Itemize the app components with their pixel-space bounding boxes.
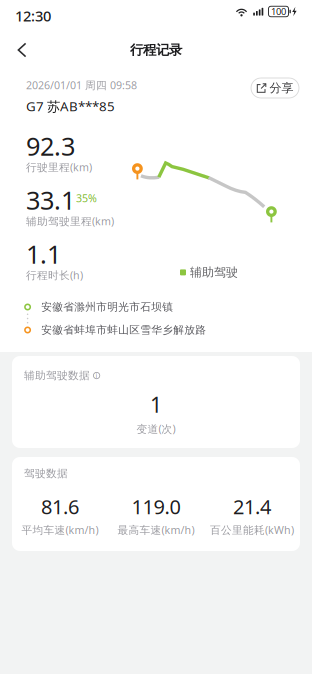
staticText: 12:30 (15, 6, 51, 25)
staticText: 119.0 (131, 493, 180, 520)
staticText: 1 (150, 390, 162, 419)
staticText: 分享 (269, 81, 293, 95)
button[interactable]: 分享 (251, 78, 299, 98)
staticText: i (96, 371, 98, 380)
staticText: 81.6 (41, 493, 79, 520)
staticText: 最高车速(km/h) (117, 523, 194, 537)
staticText: 辅助驾驶里程(km) (26, 214, 114, 228)
staticText: 变道(次) (136, 422, 175, 436)
staticText: 驾驶数据 (24, 467, 68, 480)
staticText: 百公里能耗(kWh) (210, 523, 294, 537)
staticText: 平均车速(km/h) (21, 523, 98, 537)
staticText: 行程时长(h) (26, 268, 83, 282)
button[interactable]: 返回 (0, 37, 44, 63)
staticText: 安徽省蚌埠市蚌山区雪华乡解放路 (41, 323, 206, 336)
staticText: G7 苏AB***85 (26, 97, 115, 115)
staticText: 辅助驾驶数据 (24, 369, 90, 382)
staticText: 行驶里程(km) (26, 160, 92, 174)
staticText: 21.4 (233, 493, 271, 520)
staticText: 安徽省滁州市明光市石坝镇 (41, 300, 173, 313)
staticText: 2026/01/01 周四 09:58 (26, 78, 137, 92)
staticText: 92.3 (26, 129, 75, 163)
staticText: 行程记录 (130, 42, 182, 58)
staticText: 辅助驾驶 (190, 265, 238, 280)
staticText: 100 (271, 5, 286, 18)
staticText: 1.1 (26, 237, 61, 271)
staticText: 33.1 (26, 183, 75, 217)
staticText: 35% (76, 191, 97, 205)
